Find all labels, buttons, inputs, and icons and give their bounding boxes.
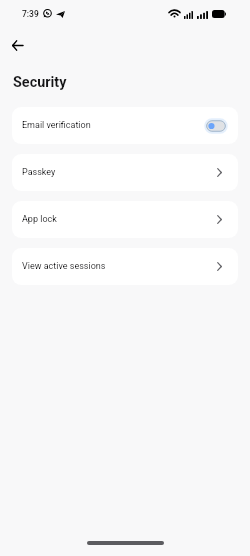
button[interactable]: App lock — [12, 201, 238, 238]
button[interactable]: Email verification — [12, 107, 238, 144]
button[interactable]: Passkey — [12, 154, 238, 191]
staticText: Security — [13, 74, 67, 91]
staticText: App lock — [22, 214, 57, 225]
staticText: Passkey — [22, 167, 56, 178]
staticText: 7:39 — [22, 9, 39, 19]
button[interactable]: Email verification toggle — [205, 119, 227, 133]
staticText: View active sessions — [22, 261, 106, 272]
button[interactable]: Back — [3, 31, 31, 59]
staticText: Email verification — [22, 120, 91, 131]
button[interactable]: View active sessions — [12, 248, 238, 285]
